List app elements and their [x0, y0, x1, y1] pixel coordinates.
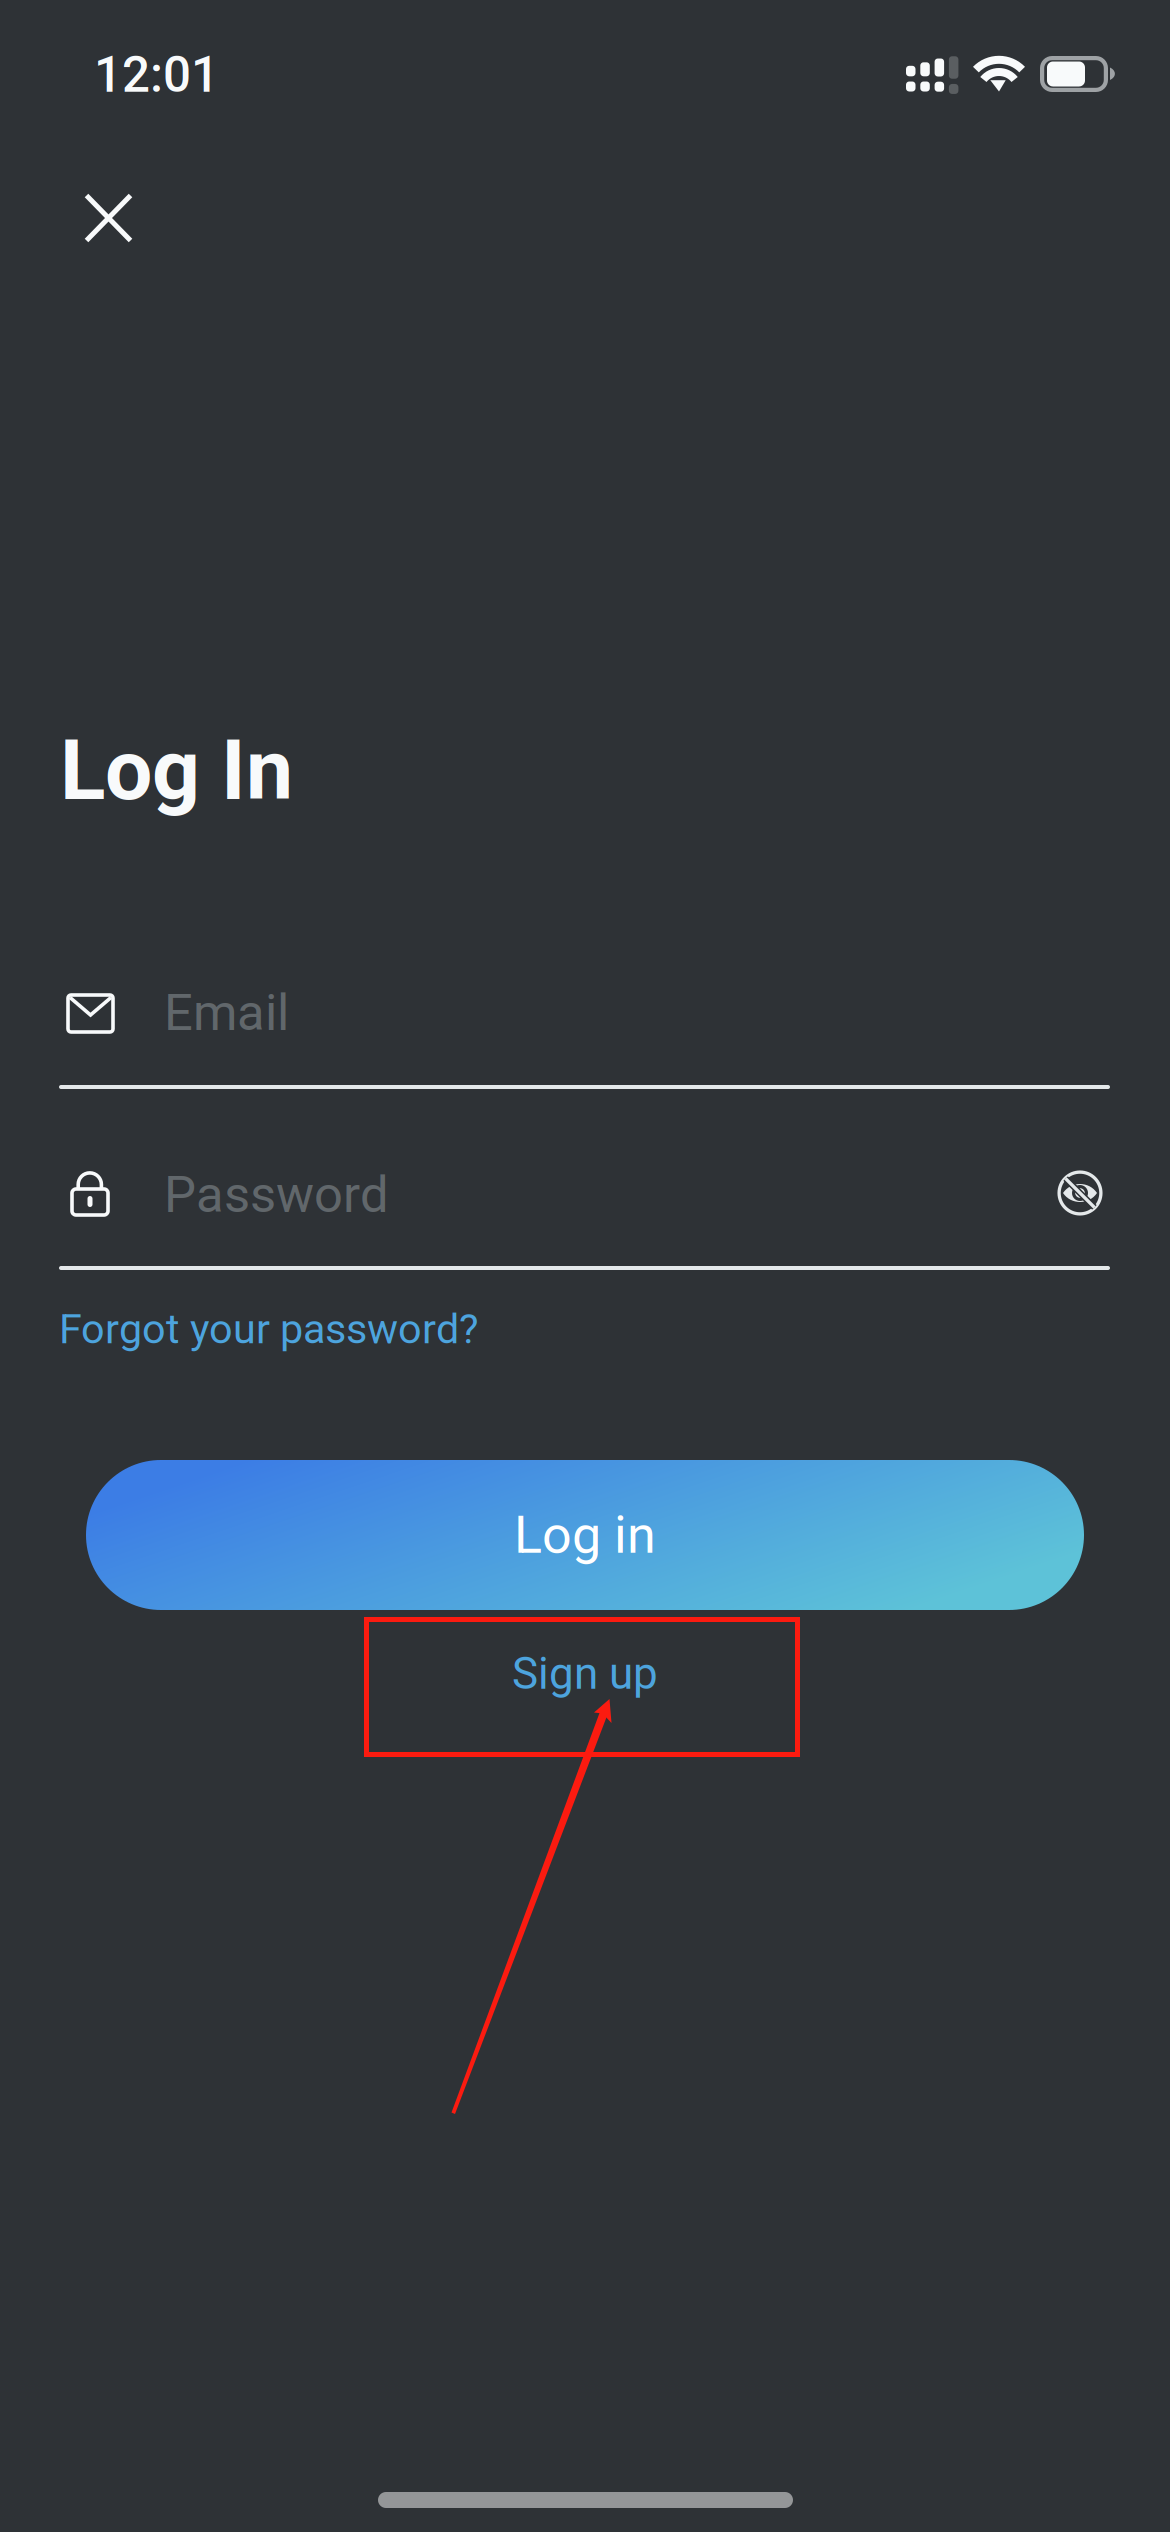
button[interactable]: Show password — [1039, 1152, 1121, 1234]
staticText: Forgot your password? — [59, 1305, 479, 1353]
button[interactable]: Forgot your password? — [49, 1291, 489, 1367]
button[interactable]: Sign up — [364, 1617, 800, 1757]
staticText: 12:01 — [94, 46, 219, 104]
staticText: Sign up — [512, 1648, 658, 1700]
staticText: Log In — [60, 721, 293, 819]
staticText: Password — [164, 1165, 389, 1224]
button[interactable]: Close — [58, 167, 159, 269]
staticText: Email — [164, 983, 289, 1042]
button[interactable]: Log in — [86, 1460, 1084, 1610]
staticText: Log in — [514, 1504, 656, 1565]
